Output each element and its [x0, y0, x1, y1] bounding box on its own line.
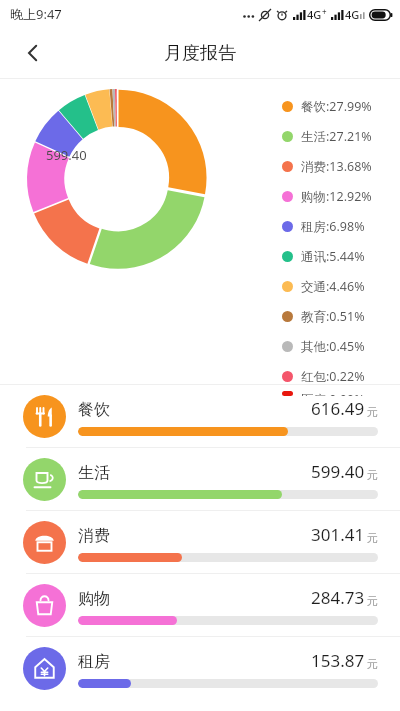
staticText: 购物 [78, 589, 110, 609]
staticText: 599.40 [46, 146, 87, 164]
staticText: 医疗:0.09% [301, 391, 365, 396]
staticText: 月度报告 [164, 42, 236, 65]
staticText: 599.40 [311, 460, 365, 483]
staticText: 消费 [78, 526, 110, 546]
staticText: 4G [307, 7, 322, 22]
button[interactable]: 餐饮 [0, 385, 400, 447]
staticText: 元 [367, 531, 378, 545]
staticText: 教育:0.51% [301, 308, 365, 325]
staticText: 通讯:5.44% [301, 248, 365, 265]
staticText: 消费:13.68% [301, 158, 372, 175]
staticText: 4G [345, 7, 360, 22]
staticText: 284.73 [311, 586, 365, 609]
staticText: 餐饮 [78, 400, 110, 420]
button[interactable]: 生活 [0, 448, 400, 510]
staticText: 元 [367, 468, 378, 482]
button[interactable]: Back [12, 32, 54, 74]
staticText: + [322, 6, 327, 17]
staticText: 元 [367, 405, 378, 419]
staticText: 购物:12.92% [301, 188, 372, 205]
button[interactable]: 租房 [0, 637, 400, 699]
staticText: 153.87 [311, 649, 365, 672]
staticText: 晚上9:47 [10, 5, 62, 23]
staticText: 元 [367, 657, 378, 671]
staticText: 交通:4.46% [301, 278, 365, 295]
button[interactable]: 消费 [0, 511, 400, 573]
staticText: 其他:0.45% [301, 338, 365, 355]
staticText: 301.41 [311, 523, 365, 546]
staticText: 租房 [78, 652, 110, 672]
staticText: 租房:6.98% [301, 218, 365, 235]
staticText: 生活 [78, 463, 110, 483]
button[interactable]: 购物 [0, 574, 400, 636]
staticText: 616.49 [311, 397, 365, 420]
staticText: 生活:27.21% [301, 128, 372, 145]
staticText: 元 [367, 594, 378, 608]
staticText: 红包:0.22% [301, 368, 365, 385]
staticText: 餐饮:27.99% [301, 98, 372, 115]
